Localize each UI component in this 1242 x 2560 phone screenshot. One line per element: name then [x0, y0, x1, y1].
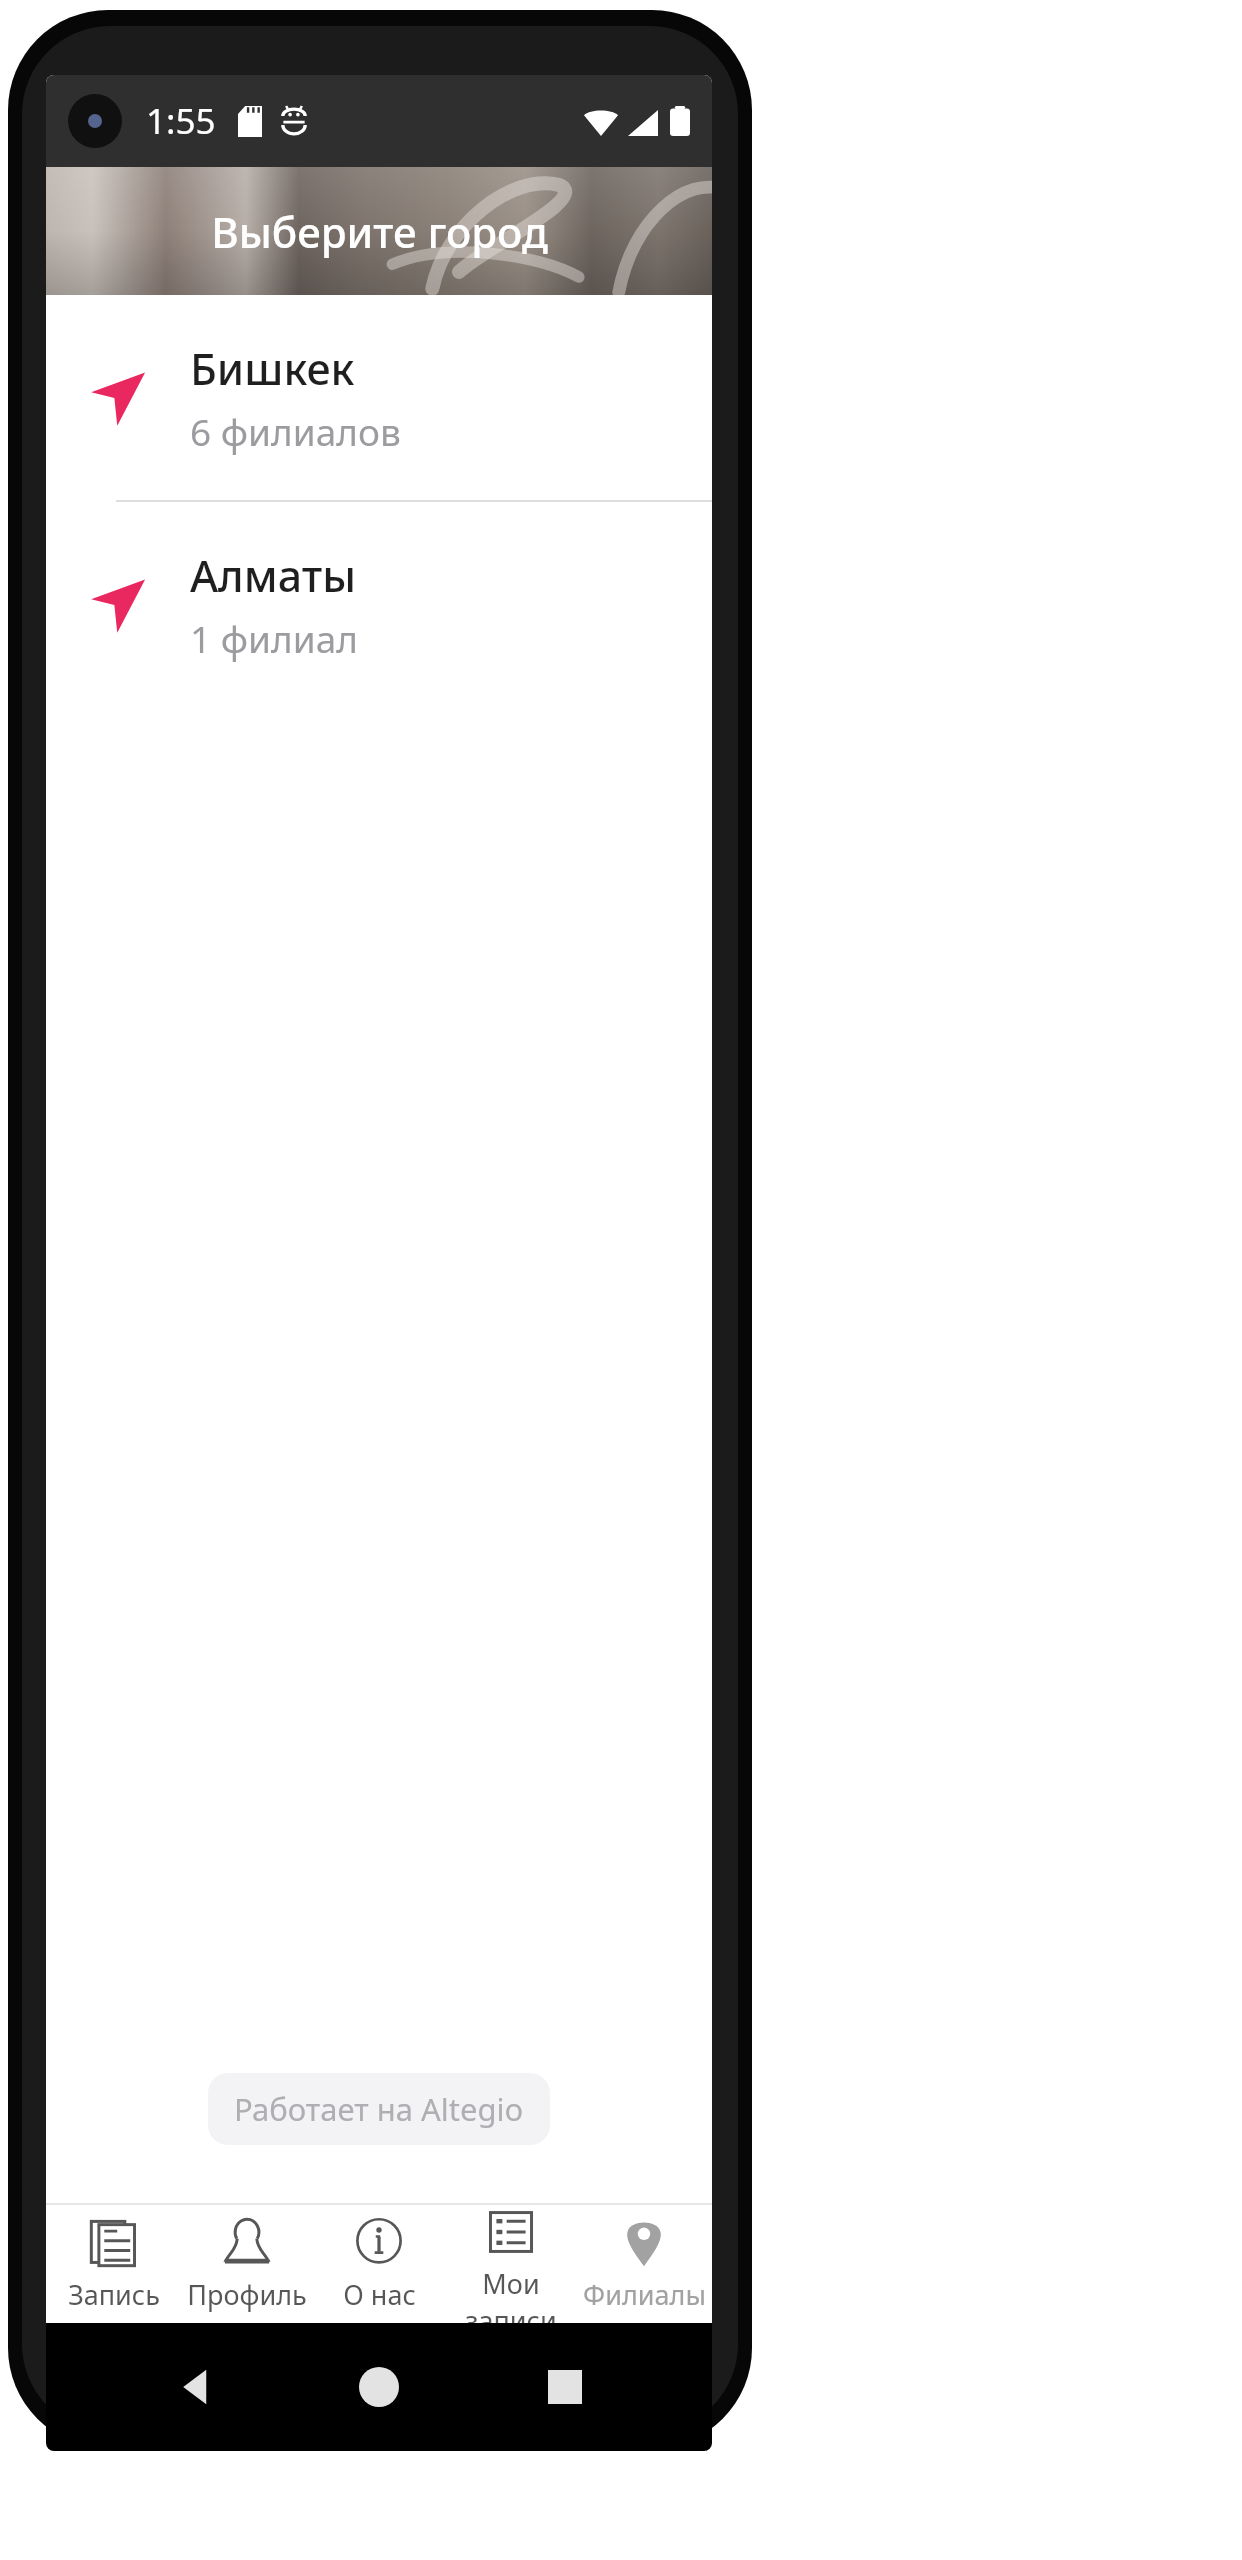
button[interactable]: Филиалы [580, 2216, 708, 2313]
button[interactable]: Recent apps [527, 2349, 603, 2425]
button[interactable]: Запись [50, 2216, 178, 2313]
staticText: Мои записи [447, 2265, 575, 2323]
staticText: 1 филиал [190, 613, 359, 663]
staticText: 1:55 [146, 97, 216, 145]
staticText: Выберите город [211, 203, 548, 260]
button[interactable]: Профиль [183, 2216, 311, 2313]
button[interactable]: Работает на Altegio [208, 2073, 550, 2145]
button[interactable]: О нас [315, 2216, 443, 2313]
button[interactable]: Мои записи [447, 2205, 575, 2323]
staticText: Филиалы [583, 2276, 706, 2313]
staticText: Работает на Altegio [234, 2088, 524, 2130]
button[interactable]: Бишкек [46, 295, 712, 500]
staticText: Алматы [190, 546, 357, 605]
staticText: Бишкек [190, 339, 355, 398]
staticText: Профиль [187, 2276, 307, 2313]
staticText: 6 филиалов [190, 406, 401, 456]
staticText: О нас [343, 2276, 416, 2313]
button[interactable]: Алматы [46, 502, 712, 707]
button[interactable]: Back [156, 2349, 232, 2425]
button[interactable]: Home [341, 2349, 417, 2425]
staticText: Запись [68, 2276, 160, 2313]
